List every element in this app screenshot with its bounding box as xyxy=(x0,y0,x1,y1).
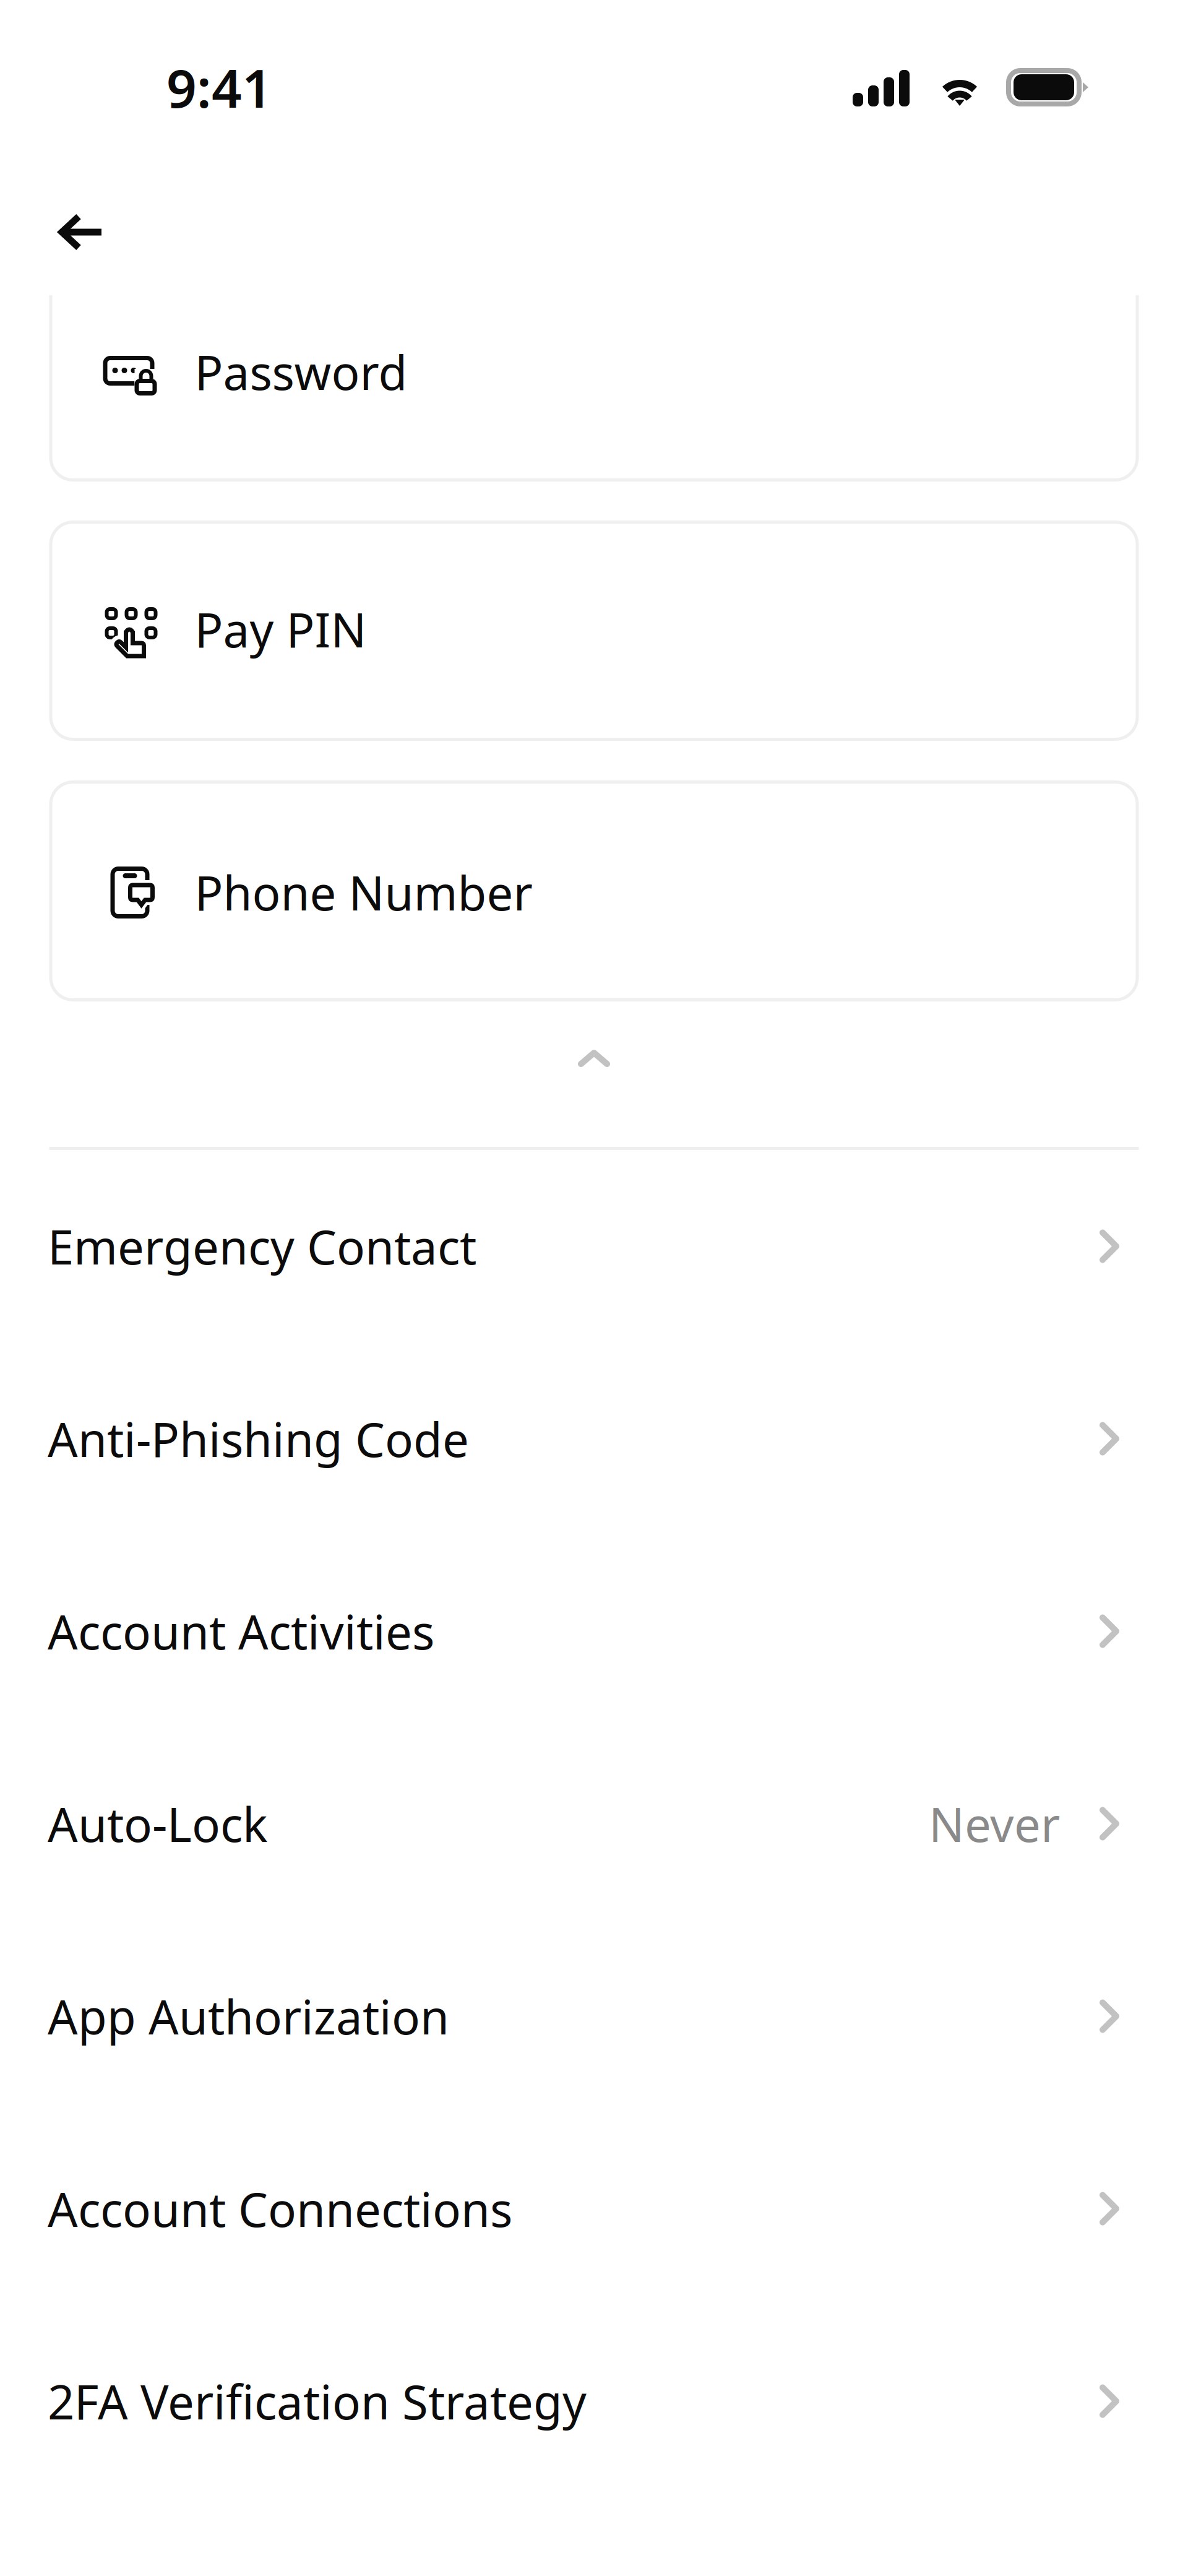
staticText: Password xyxy=(195,340,407,403)
staticText: Account Connections xyxy=(48,2177,512,2240)
staticText: Phone Number xyxy=(195,861,532,923)
staticText: Anti-Phishing Code xyxy=(48,1407,469,1470)
button[interactable]: Back xyxy=(54,212,109,254)
button[interactable]: Account Connections xyxy=(0,2112,1188,2305)
staticText: App Authorization xyxy=(48,1985,449,2047)
staticText: Pay PIN xyxy=(195,598,367,660)
button[interactable]: Phone Number xyxy=(49,780,1139,1001)
button[interactable]: App Authorization xyxy=(0,1920,1188,2112)
button[interactable]: 2FA Verification Strategy xyxy=(0,2305,1188,2497)
button[interactable]: Pay PIN xyxy=(49,521,1139,741)
staticText: 9:41 xyxy=(166,52,272,122)
staticText: 2FA Verification Strategy xyxy=(48,2370,587,2432)
button[interactable]: Auto-Lock xyxy=(0,1727,1188,1920)
staticText: Account Activities xyxy=(48,1600,434,1662)
staticText: Never xyxy=(929,1792,1060,1855)
staticText: Auto-Lock xyxy=(48,1792,268,1855)
button[interactable]: Account Activities xyxy=(0,1535,1188,1727)
button[interactable]: Anti-Phishing Code xyxy=(0,1342,1188,1535)
button[interactable]: Emergency Contact xyxy=(0,1150,1188,1342)
staticText: Emergency Contact xyxy=(48,1215,476,1277)
button[interactable]: Password xyxy=(49,261,1139,482)
